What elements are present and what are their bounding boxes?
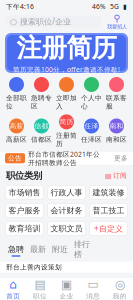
- staticText: 邢台市信都区2021年公开招聘教师公告: [28, 150, 100, 167]
- button[interactable]: 任泽: [79, 118, 104, 144]
- button[interactable]: 文职文员: [47, 221, 85, 235]
- staticText: 急聘: [8, 244, 24, 254]
- staticText: 更多: [114, 154, 128, 162]
- staticText: 简历完善100分，offer邀请不停歇!: [13, 65, 120, 74]
- button[interactable]: ▭: [80, 278, 106, 300]
- staticText: ○: [10, 17, 17, 26]
- staticText: 立即加入: [56, 94, 77, 110]
- button[interactable]: 南和: [104, 118, 129, 144]
- button[interactable]: 行政人事: [47, 185, 85, 199]
- staticText: 46% 5G ▮: [92, 2, 127, 11]
- staticText: 全部职位: [6, 94, 27, 110]
- staticText: ▣: [61, 278, 72, 291]
- staticText: 信都: [34, 122, 48, 130]
- button[interactable]: +自定义: [89, 221, 127, 235]
- staticText: ▭: [88, 278, 99, 291]
- staticText: 企业: [59, 292, 73, 300]
- button[interactable]: 高薪: [4, 118, 29, 144]
- button[interactable]: ▤: [27, 278, 53, 300]
- button[interactable]: [29, 77, 54, 110]
- staticText: ⚲: [113, 13, 120, 23]
- button[interactable]: 客户服务: [5, 203, 43, 217]
- staticText: 任泽区: [81, 135, 102, 144]
- button[interactable]: 排行榜: [71, 239, 93, 262]
- button[interactable]: [104, 77, 129, 110]
- staticText: 急聘专区: [31, 94, 52, 110]
- staticText: 行政人事: [50, 188, 82, 197]
- button[interactable]: 附近: [49, 244, 71, 257]
- button[interactable]: 会计财务: [47, 203, 85, 217]
- staticText: 附近: [52, 244, 68, 254]
- staticText: 教育培训: [8, 224, 40, 233]
- button[interactable]: 市场销售: [5, 185, 43, 199]
- staticText: ⌂: [9, 278, 17, 291]
- staticText: ▤: [34, 278, 45, 291]
- button[interactable]: ▣: [53, 278, 80, 300]
- staticText: 市场销售: [8, 188, 40, 197]
- staticText: 高薪区: [6, 135, 27, 144]
- button[interactable]: 建筑装修: [89, 185, 127, 199]
- staticText: 普工技工: [92, 206, 124, 215]
- staticText: 搜索职位/企业: [20, 16, 71, 27]
- staticText: 首页: [6, 292, 20, 300]
- button[interactable]: ▤ 订阅: [105, 171, 127, 180]
- staticText: 信都区: [31, 135, 52, 144]
- button[interactable]: 信都: [29, 118, 54, 144]
- staticText: 最新: [30, 244, 46, 254]
- staticText: 任泽: [84, 122, 98, 130]
- button[interactable]: 最新: [27, 244, 49, 257]
- staticText: 会计财务: [50, 206, 82, 215]
- staticText: 消息: [86, 292, 100, 300]
- staticText: 下午4:16: [6, 2, 34, 11]
- staticText: 南和: [109, 122, 123, 130]
- staticText: 注册简历: [56, 131, 77, 148]
- button[interactable]: 普工技工: [89, 203, 127, 217]
- staticText: 我要招人: [107, 23, 127, 30]
- staticText: 高薪: [9, 122, 23, 130]
- staticText: 职位: [33, 292, 47, 300]
- staticText: 文职文员: [50, 224, 82, 233]
- button[interactable]: ○: [5, 15, 102, 27]
- button[interactable]: 简历: [54, 114, 79, 148]
- staticText: +自定义: [94, 223, 123, 234]
- button[interactable]: [79, 77, 104, 110]
- staticText: 注册简历: [16, 32, 116, 64]
- staticText: 我的: [113, 292, 127, 300]
- staticText: 邢台上善内设策划: [6, 263, 62, 271]
- button[interactable]: 公告: [0, 152, 133, 165]
- button[interactable]: 急聘: [5, 244, 27, 257]
- staticText: 公告: [8, 154, 22, 162]
- button[interactable]: ◎: [106, 278, 133, 300]
- staticText: 排行榜: [74, 239, 90, 259]
- button[interactable]: 注册简历: [5, 33, 128, 73]
- button[interactable]: 我要招人: [106, 13, 128, 30]
- staticText: 南和区: [106, 135, 127, 144]
- button[interactable]: [54, 77, 79, 110]
- button[interactable]: [4, 77, 29, 110]
- staticText: 职位类别: [6, 170, 42, 182]
- staticText: 简历: [59, 118, 73, 126]
- staticText: 建筑装修: [92, 188, 124, 197]
- staticText: 联系客服: [106, 94, 127, 110]
- button[interactable]: 邢台上善内设策划: [0, 262, 133, 273]
- staticText: ◎: [115, 278, 125, 291]
- staticText: 客户服务: [8, 206, 40, 215]
- staticText: 个人中心: [81, 94, 102, 110]
- button[interactable]: 教育培训: [5, 221, 43, 235]
- button[interactable]: ⌂: [0, 278, 27, 300]
- staticText: ▤ 订阅: [105, 171, 127, 180]
